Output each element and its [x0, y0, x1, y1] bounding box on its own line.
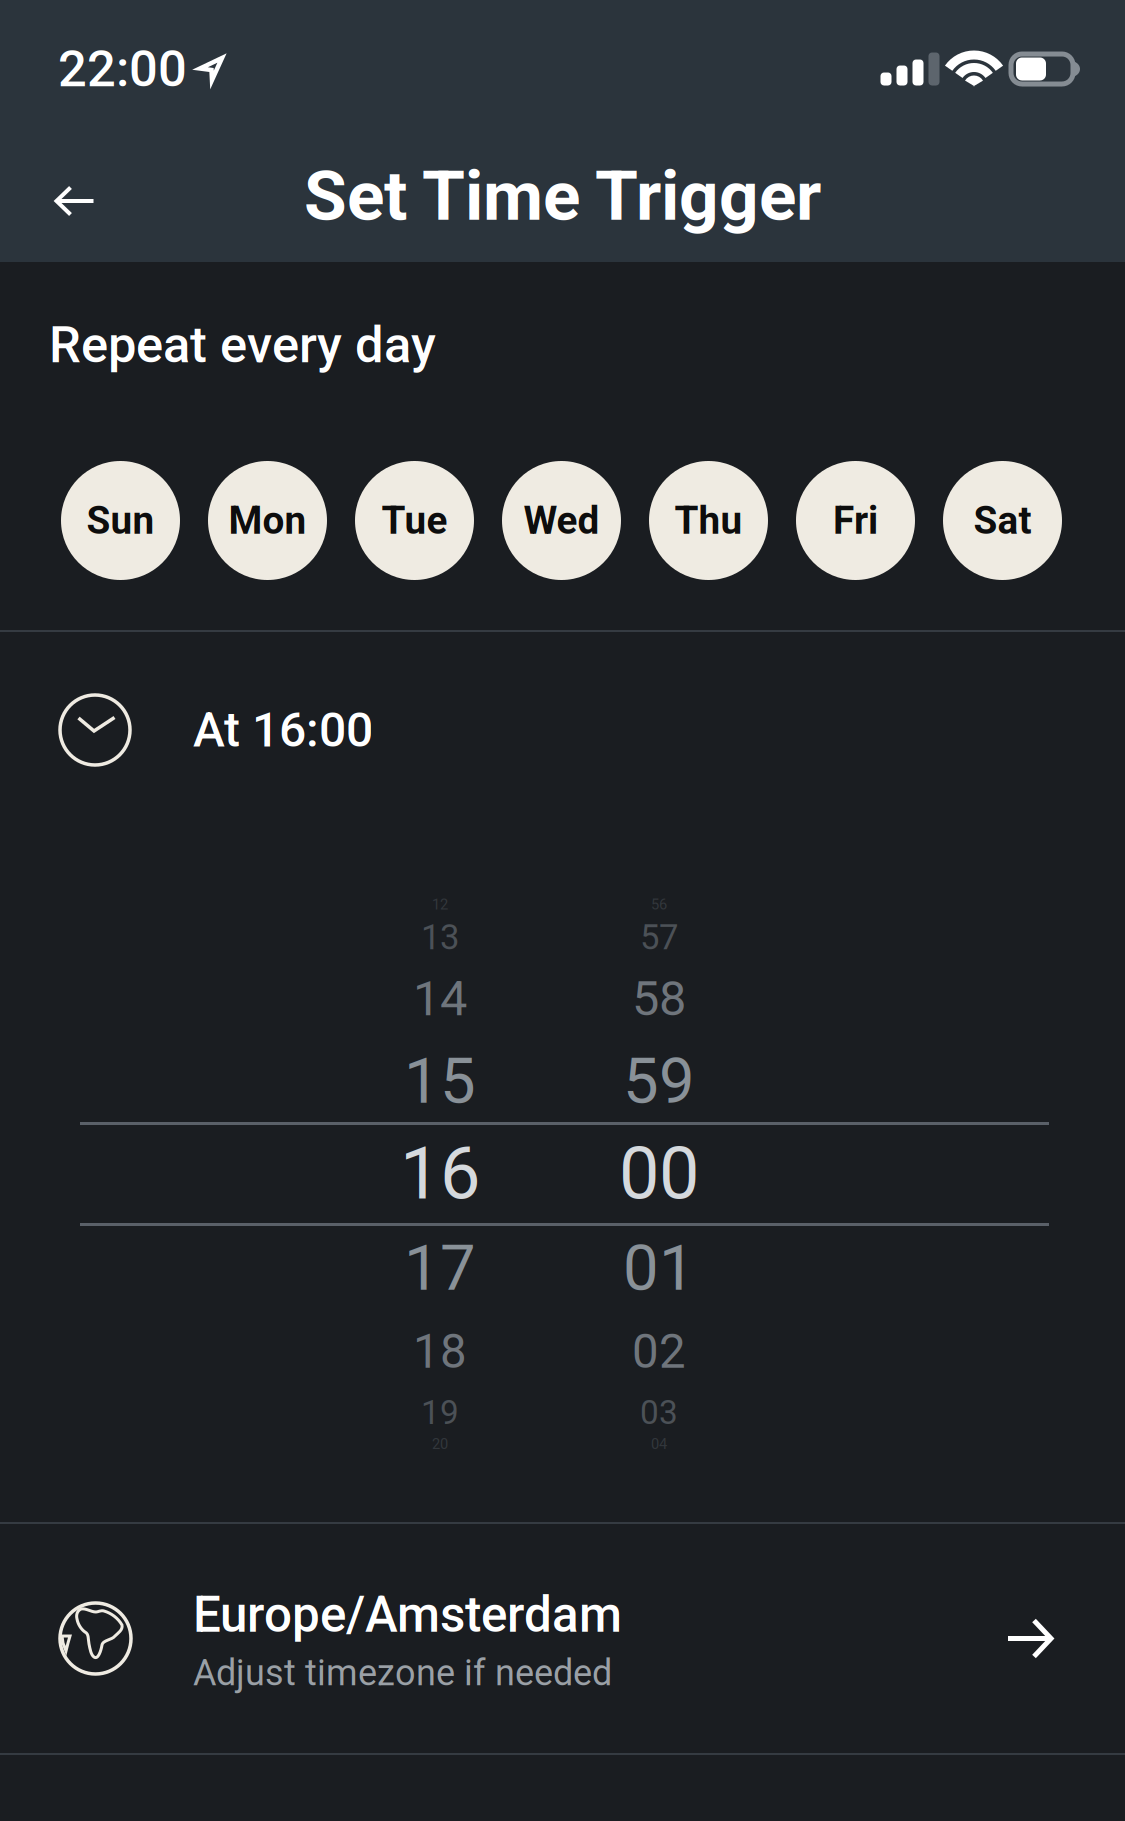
button[interactable]: Wed: [502, 461, 621, 580]
staticText: 13: [421, 917, 459, 958]
staticText: Sun: [86, 498, 154, 543]
staticText: Adjust timezone if needed: [193, 1652, 612, 1694]
button[interactable]: Sat: [943, 461, 1062, 580]
staticText: Tue: [381, 498, 447, 543]
button[interactable]: Mon: [208, 461, 327, 580]
staticText: 22:00: [58, 39, 187, 99]
staticText: Sat: [973, 498, 1031, 543]
button[interactable]: Tue: [355, 461, 474, 580]
staticText: 12: [432, 896, 448, 913]
staticText: 16: [400, 1132, 480, 1216]
button[interactable]: Europe/Amsterdam: [0, 1524, 1125, 1753]
staticText: 19: [421, 1393, 459, 1432]
staticText: 03: [640, 1393, 678, 1432]
staticText: 57: [640, 917, 678, 958]
staticText: Set Time Trigger: [304, 155, 821, 237]
staticText: 00: [619, 1132, 699, 1216]
staticText: 04: [651, 1435, 667, 1453]
staticText: At 16:00: [193, 702, 373, 758]
staticText: Wed: [523, 498, 599, 543]
button[interactable]: Sun: [61, 461, 180, 580]
staticText: 01: [623, 1231, 695, 1305]
staticText: 02: [632, 1324, 686, 1379]
button[interactable]: Back: [31, 141, 119, 251]
staticText: Thu: [674, 498, 742, 543]
staticText: 14: [413, 970, 467, 1027]
staticText: 20: [432, 1435, 448, 1453]
staticText: 59: [623, 1044, 695, 1118]
staticText: Europe/Amsterdam: [193, 1586, 622, 1644]
staticText: Mon: [228, 498, 306, 543]
button[interactable]: Fri: [796, 461, 915, 580]
staticText: 15: [404, 1044, 476, 1118]
staticText: 58: [632, 970, 686, 1027]
staticText: Fri: [833, 498, 878, 543]
staticText: 56: [651, 896, 667, 913]
button[interactable]: Thu: [649, 461, 768, 580]
staticText: 18: [413, 1324, 467, 1379]
staticText: 17: [404, 1231, 476, 1305]
staticText: Repeat every day: [49, 315, 436, 375]
